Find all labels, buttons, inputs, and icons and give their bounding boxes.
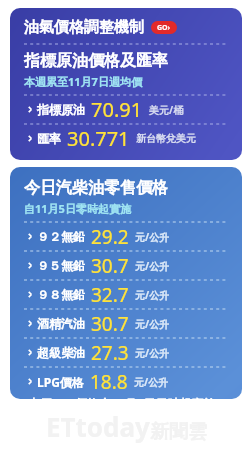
- staticText: 新台幣兌美元: [136, 132, 196, 145]
- staticText: 自11月5日零時起實施: [24, 201, 131, 216]
- staticText: 元/公升: [135, 317, 170, 331]
- button[interactable]: 超級柴油: [24, 339, 228, 366]
- staticText: 元/公升: [135, 288, 170, 302]
- staticText: ９８無鉛: [37, 287, 85, 302]
- staticText: GO›: [157, 23, 171, 33]
- staticText: 本週累至11月7日週均價: [24, 74, 142, 89]
- staticText: 酒精汽油: [37, 316, 85, 331]
- staticText: 30.7: [91, 253, 129, 279]
- staticText: 新聞雲: [150, 420, 207, 444]
- button[interactable]: 酒精汽油: [24, 310, 228, 337]
- staticText: 指標原油: [37, 102, 85, 117]
- staticText: 29.2: [91, 224, 129, 250]
- staticText: ９５無鉛: [37, 258, 85, 273]
- staticText: 70.91: [91, 96, 143, 123]
- button[interactable]: 匯率: [24, 125, 228, 152]
- staticText: LPG價格: [37, 374, 84, 390]
- staticText: 30.771: [67, 125, 130, 152]
- staticText: 今日汽柴油零售價格: [24, 178, 168, 198]
- staticText: 32.7: [91, 282, 129, 308]
- button[interactable]: ９８無鉛: [24, 281, 228, 308]
- button[interactable]: 今日汽柴油零售價格: [10, 167, 242, 399]
- button[interactable]: GO: [151, 21, 177, 34]
- button[interactable]: 油氣價格調整機制: [10, 8, 242, 160]
- button[interactable]: LPG價格: [24, 368, 228, 395]
- staticText: (車用LPG價格自11月2日零時起實施): [24, 395, 220, 399]
- button[interactable]: ９２無鉛: [24, 223, 228, 250]
- staticText: ETtoday: [46, 409, 150, 444]
- staticText: 30.7: [91, 311, 129, 337]
- staticText: 指標原油價格及匯率: [24, 51, 168, 71]
- staticText: 元/公升: [135, 346, 170, 360]
- staticText: 元/公升: [135, 230, 170, 244]
- button[interactable]: ９５無鉛: [24, 252, 228, 279]
- staticText: ９２無鉛: [37, 229, 85, 244]
- staticText: 18.8: [90, 369, 128, 395]
- staticText: 元/公升: [134, 375, 169, 389]
- staticText: 元/公升: [135, 259, 170, 273]
- staticText: 27.3: [91, 340, 129, 366]
- staticText: 匯率: [37, 131, 61, 146]
- staticText: 油氣價格調整機制: [24, 18, 144, 37]
- button[interactable]: 指標原油: [24, 96, 228, 123]
- staticText: 美元/桶: [149, 103, 184, 117]
- staticText: 超級柴油: [37, 345, 85, 360]
